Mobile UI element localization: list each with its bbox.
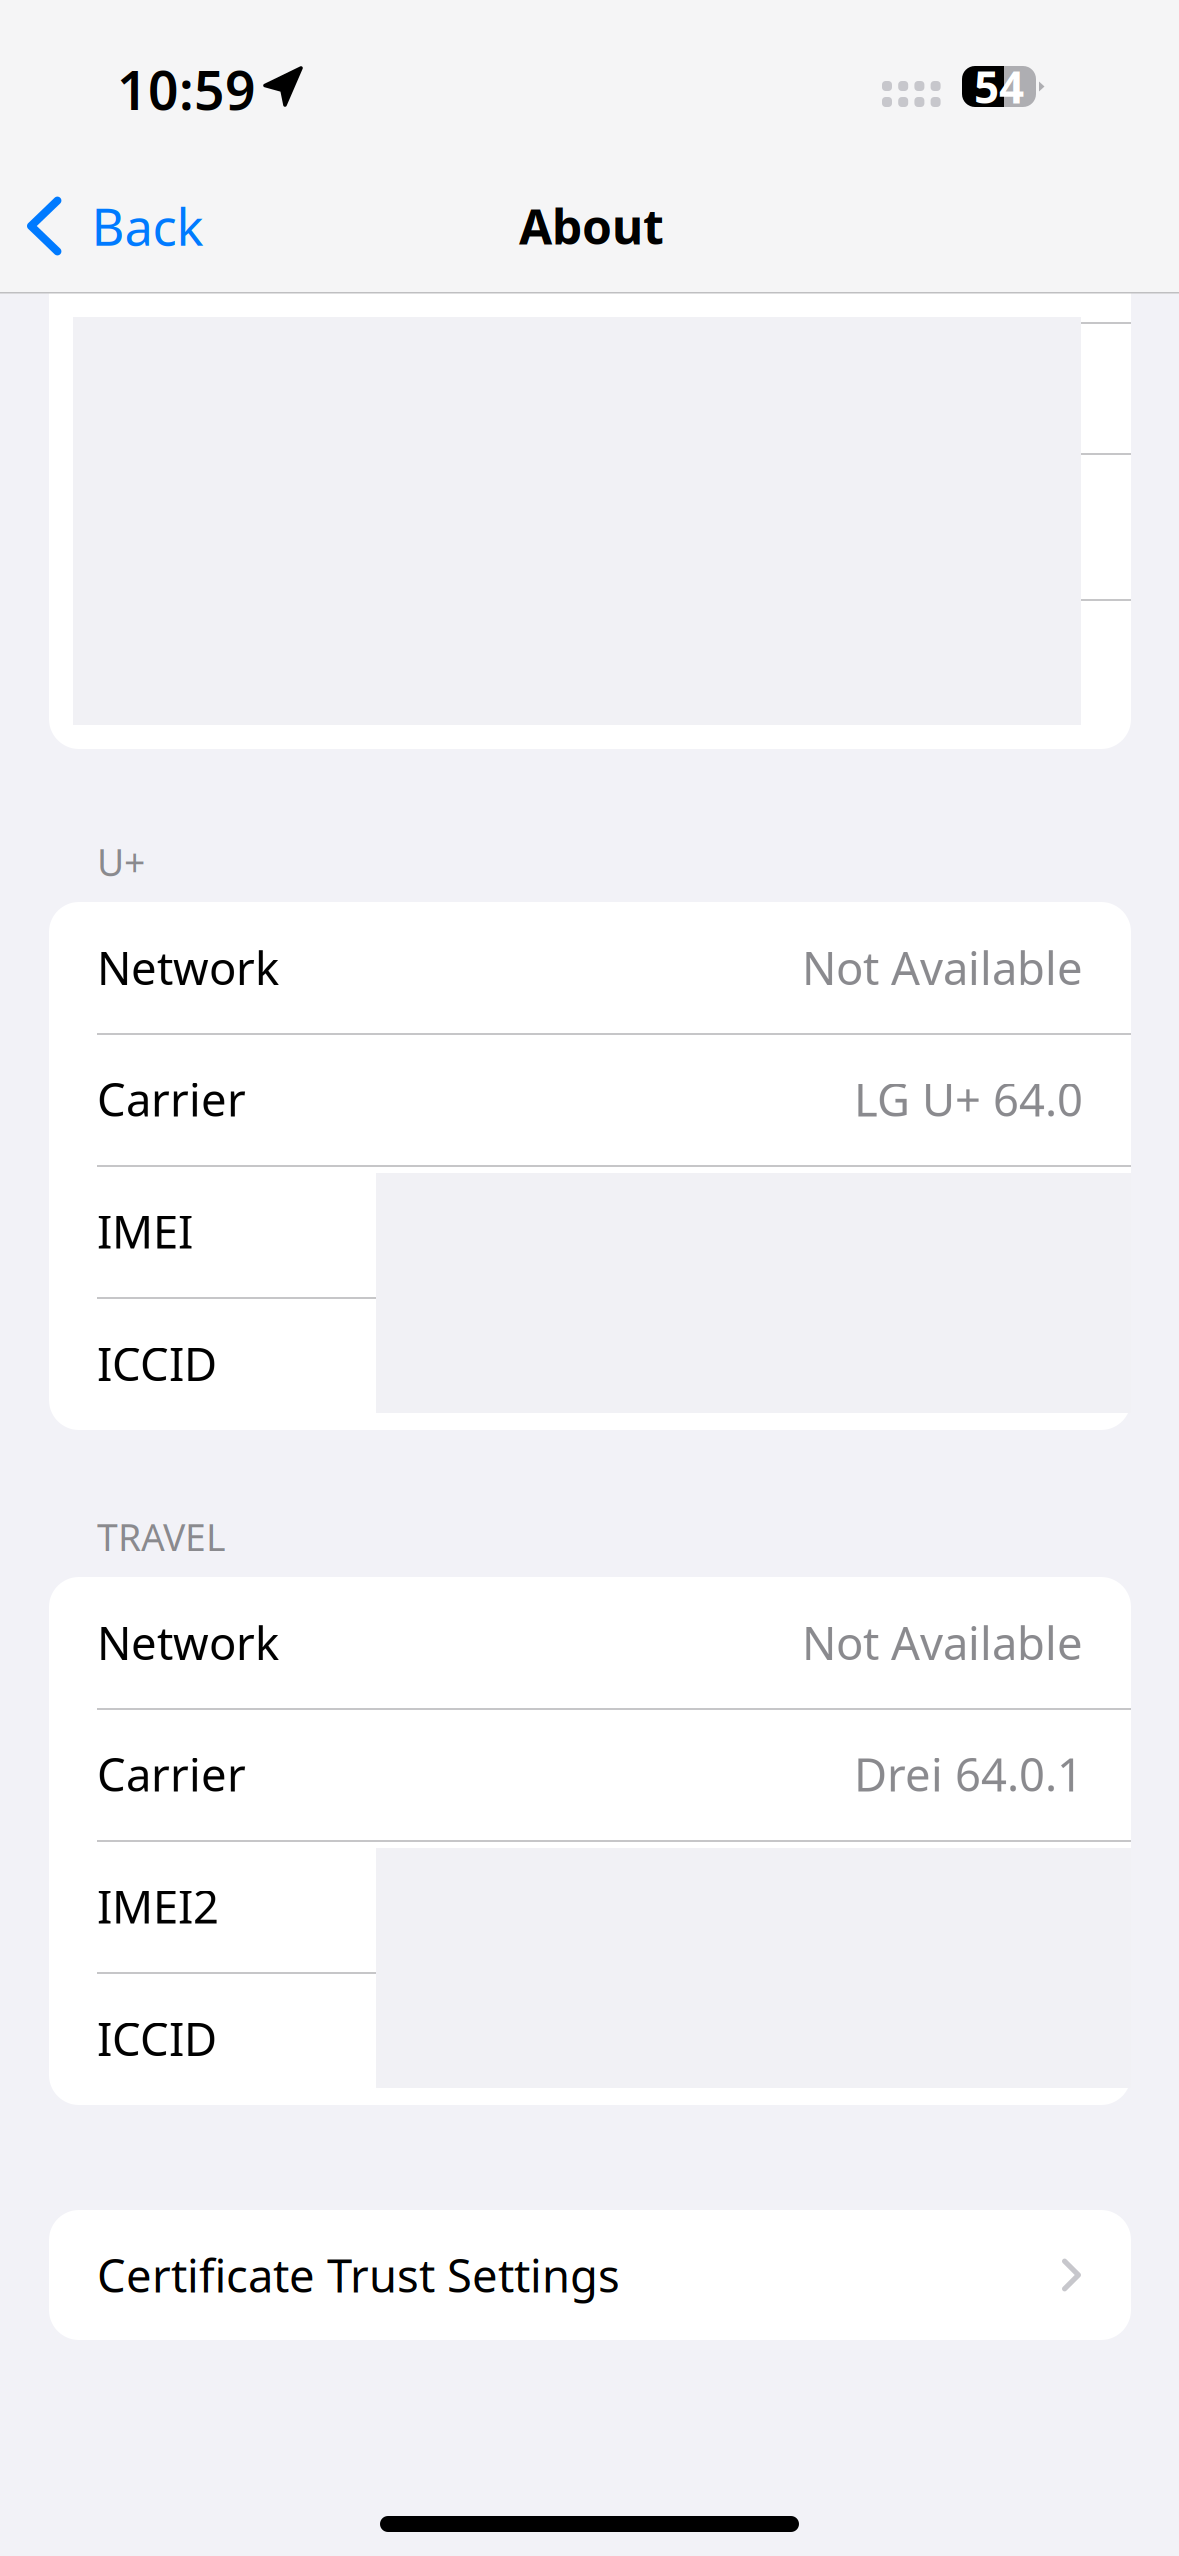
staticText: Not Available bbox=[802, 1612, 1083, 1673]
button[interactable]: Back bbox=[0, 167, 227, 285]
staticText: IMEI2 bbox=[97, 1876, 219, 1936]
staticText: About bbox=[519, 194, 664, 258]
button[interactable]: ICCID bbox=[49, 1972, 1131, 2105]
staticText: Drei 64.0.1 bbox=[854, 1744, 1083, 1804]
button[interactable]: Network bbox=[49, 902, 1131, 1033]
button[interactable]: IMEI bbox=[49, 1165, 1131, 1297]
staticText: U+ bbox=[97, 837, 145, 887]
staticText: Carrier bbox=[97, 1069, 246, 1129]
staticText: 54 bbox=[974, 57, 1024, 116]
button[interactable]: Network bbox=[49, 1577, 1131, 1708]
staticText: Back bbox=[91, 192, 203, 260]
staticText: Certificate Trust Settings bbox=[97, 2245, 620, 2305]
staticText: Network bbox=[97, 1612, 279, 1673]
staticText: Not Available bbox=[802, 937, 1083, 998]
staticText: Carrier bbox=[97, 1744, 246, 1804]
button[interactable]: Model Name bbox=[49, 455, 1131, 601]
button[interactable]: ICCID bbox=[49, 1297, 1131, 1430]
staticText: 10:59 bbox=[117, 54, 256, 125]
staticText: IMEI bbox=[97, 1201, 193, 1261]
staticText: TRAVEL bbox=[97, 1512, 226, 1562]
button[interactable]: Carrier bbox=[49, 1033, 1131, 1165]
button[interactable]: Name bbox=[49, 260, 1131, 322]
staticText: ICCID bbox=[97, 2008, 217, 2069]
button[interactable]: Carrier bbox=[49, 1708, 1131, 1840]
button[interactable]: Software Version bbox=[49, 324, 1131, 455]
button[interactable]: Certificate Trust Settings bbox=[49, 2210, 1131, 2340]
staticText: ICCID bbox=[97, 1333, 217, 1394]
staticText: Network bbox=[97, 937, 279, 998]
button[interactable]: Model Number bbox=[49, 601, 1131, 749]
button[interactable]: IMEI2 bbox=[49, 1840, 1131, 1972]
staticText: LG U+ 64.0 bbox=[854, 1069, 1083, 1129]
